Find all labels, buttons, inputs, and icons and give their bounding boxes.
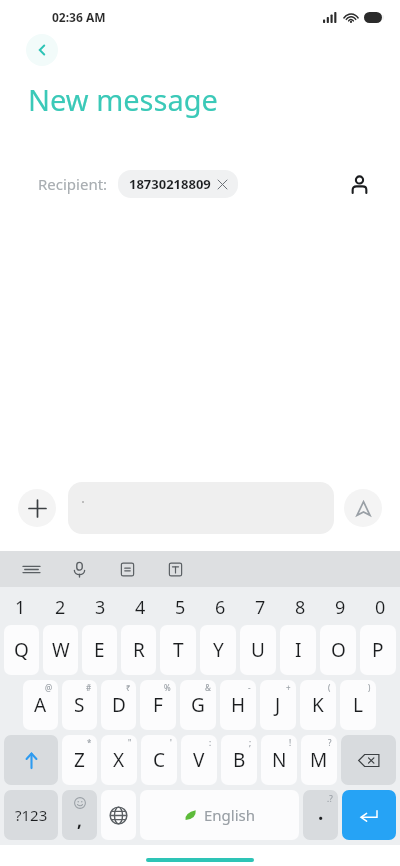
button[interactable]: E	[82, 625, 117, 675]
staticText: 5	[175, 595, 186, 620]
staticText: :	[209, 737, 212, 748]
button[interactable]: K	[300, 680, 336, 730]
staticText: T	[173, 637, 184, 663]
staticText: #	[86, 682, 92, 693]
staticText: O	[331, 637, 346, 663]
staticText: .?	[327, 793, 333, 804]
button[interactable]: Contacts	[342, 167, 376, 201]
staticText: G	[191, 692, 205, 718]
staticText: 8	[295, 595, 306, 620]
staticText: 02:36 AM	[52, 9, 106, 25]
staticText: J	[275, 692, 281, 718]
button[interactable]: G	[180, 680, 216, 730]
button[interactable]: Text settings	[162, 556, 188, 582]
staticText: New message	[28, 80, 218, 119]
button[interactable]: A	[23, 680, 58, 730]
staticText: Recipient:	[38, 174, 108, 194]
button[interactable]: 8	[280, 591, 320, 623]
button[interactable]: 5	[160, 591, 200, 623]
button[interactable]: U	[240, 625, 276, 675]
staticText: X	[113, 747, 125, 773]
staticText: R	[133, 637, 145, 663]
button[interactable]: 6	[200, 591, 240, 623]
button[interactable]: O	[320, 625, 356, 675]
button[interactable]: Backspace	[341, 735, 396, 785]
button[interactable]: I	[280, 625, 316, 675]
button[interactable]: Enter	[342, 790, 396, 840]
button[interactable]: Q	[4, 625, 39, 675]
button[interactable]: T	[160, 625, 196, 675]
staticText: 3	[95, 595, 106, 620]
button[interactable]: 1	[0, 591, 40, 623]
button[interactable]: Emoji and comma	[62, 790, 97, 840]
staticText: .	[318, 800, 324, 826]
button[interactable]: Add attachment	[18, 489, 56, 527]
button[interactable]: F	[140, 680, 176, 730]
button[interactable]: B	[221, 735, 257, 785]
staticText: K	[312, 692, 324, 718]
button[interactable]: 7	[240, 591, 280, 623]
staticText: "	[128, 737, 132, 748]
button[interactable]: Shift	[4, 735, 58, 785]
button[interactable]: V	[181, 735, 217, 785]
button[interactable]: Z	[62, 735, 97, 785]
button[interactable]: Send	[344, 489, 382, 527]
button[interactable]: Clipboard	[114, 556, 140, 582]
button[interactable]: Back	[26, 34, 58, 66]
button[interactable]: C	[141, 735, 177, 785]
button[interactable]: W	[43, 625, 78, 675]
button[interactable]: 3	[80, 591, 120, 623]
staticText: V	[193, 747, 205, 773]
button[interactable]: Menu	[18, 556, 44, 582]
staticText: ₹	[126, 682, 131, 693]
staticText: W	[52, 637, 70, 663]
staticText: L	[353, 692, 363, 718]
button[interactable]: D	[101, 680, 136, 730]
button[interactable]: Y	[200, 625, 236, 675]
staticText: @	[45, 682, 53, 693]
button[interactable]: Voice input	[66, 556, 92, 582]
staticText: U	[251, 637, 265, 663]
button[interactable]: H	[220, 680, 256, 730]
staticText: +	[286, 682, 291, 693]
button[interactable]: 2	[40, 591, 80, 623]
staticText: 2	[55, 595, 66, 620]
button[interactable]: M	[301, 735, 337, 785]
staticText: C	[153, 747, 166, 773]
staticText: ;	[249, 737, 252, 748]
staticText: ?123	[15, 805, 48, 825]
staticText: English	[204, 805, 256, 825]
staticText: -	[248, 682, 251, 693]
staticText: )	[368, 682, 371, 693]
staticText: Q	[14, 637, 29, 663]
staticText: 0	[375, 595, 386, 620]
staticText: Y	[213, 637, 224, 663]
button[interactable]: ?123	[4, 790, 58, 840]
button[interactable]: 18730218809	[118, 170, 238, 198]
staticText: 4	[135, 595, 146, 620]
button[interactable]: J	[260, 680, 296, 730]
button[interactable]: S	[62, 680, 97, 730]
staticText: '	[170, 737, 172, 748]
staticText: B	[233, 747, 246, 773]
staticText: 1	[15, 595, 26, 620]
button[interactable]: 9	[320, 591, 360, 623]
button[interactable]: 4	[120, 591, 160, 623]
button[interactable]: P	[360, 625, 396, 675]
button[interactable]: Period	[303, 790, 338, 840]
staticText: H	[231, 692, 246, 718]
staticText: (	[328, 682, 331, 693]
button[interactable]: N	[261, 735, 297, 785]
staticText: I	[295, 637, 302, 663]
staticText: &	[205, 682, 211, 693]
staticText: S	[74, 692, 85, 718]
button[interactable]: 0	[360, 591, 400, 623]
button[interactable]: English	[140, 790, 299, 840]
button[interactable]: X	[101, 735, 137, 785]
button[interactable]: L	[340, 680, 376, 730]
button[interactable]: Switch language	[101, 790, 136, 840]
staticText: 7	[255, 595, 266, 620]
staticText: *	[87, 737, 92, 748]
button[interactable]: R	[121, 625, 156, 675]
